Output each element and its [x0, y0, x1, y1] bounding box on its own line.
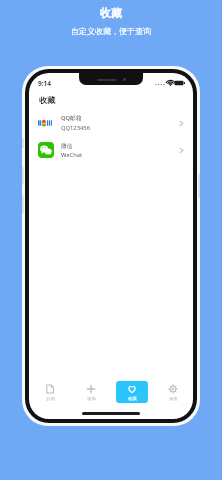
button[interactable]: Settings [157, 381, 189, 403]
staticText: 分词 [46, 396, 55, 401]
staticText: QQ123456 [61, 124, 90, 132]
button[interactable]: 微信 [29, 139, 193, 161]
staticText: QQ邮箱 [61, 114, 82, 122]
staticText: 自定义收藏，便于查询 [71, 26, 151, 36]
button[interactable]: Documents [34, 381, 66, 403]
staticText: 添加 [87, 396, 96, 401]
button[interactable]: Favorites [116, 381, 148, 403]
button[interactable]: Add [75, 381, 107, 403]
button[interactable]: QQ邮箱 [29, 112, 193, 134]
staticText: 收藏 [128, 396, 137, 401]
staticText: 微信 [61, 142, 73, 149]
staticText: 收藏 [100, 6, 122, 20]
staticText: WeChat [61, 151, 83, 159]
staticText: 收藏 [39, 95, 55, 105]
staticText: 设置 [169, 396, 178, 401]
staticText: 9:14 [38, 79, 51, 88]
